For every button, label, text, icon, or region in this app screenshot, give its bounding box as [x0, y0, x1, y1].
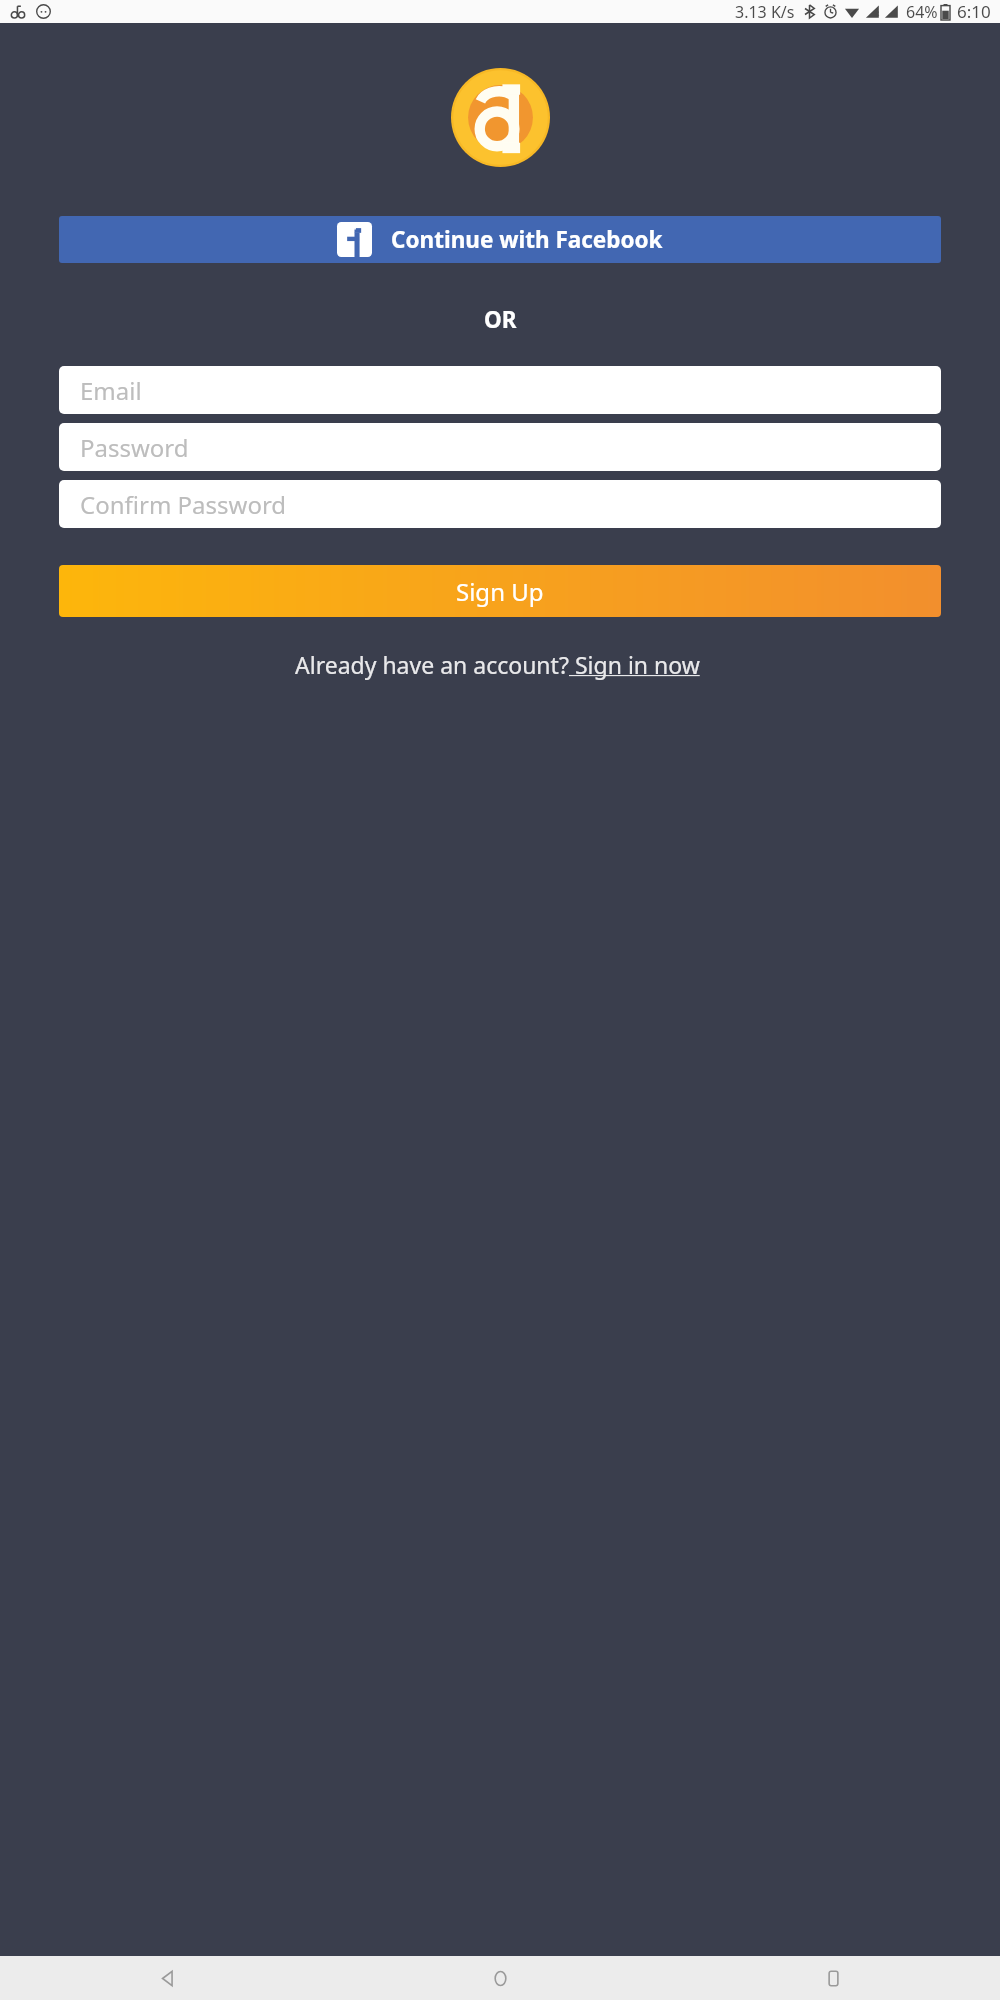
button[interactable]: Email: [59, 366, 941, 414]
staticText: Sign Up: [456, 575, 544, 608]
button[interactable]: Back: [0, 1956, 334, 2000]
staticText: Continue with Facebook: [391, 224, 663, 255]
staticText: Password: [80, 431, 189, 464]
staticText: Already have an account?: [295, 649, 569, 680]
staticText: 64%: [906, 1, 938, 23]
staticText: 3.13 K/s: [735, 1, 795, 23]
staticText: Sign in now: [569, 649, 706, 680]
button[interactable]: Sign Up: [59, 565, 941, 617]
staticText: R: [875, 9, 880, 19]
button[interactable]: Already have an account?: [295, 649, 706, 680]
staticText: OR: [484, 304, 517, 335]
staticText: Confirm Password: [80, 488, 287, 521]
button[interactable]: Confirm Password: [59, 480, 941, 528]
button[interactable]: Password: [59, 423, 941, 471]
staticText: 6:10: [957, 0, 991, 23]
button[interactable]: Continue with Facebook: [59, 216, 941, 263]
button[interactable]: Home: [334, 1956, 667, 2000]
button[interactable]: Recent apps: [667, 1956, 1000, 2000]
staticText: Email: [80, 374, 142, 407]
